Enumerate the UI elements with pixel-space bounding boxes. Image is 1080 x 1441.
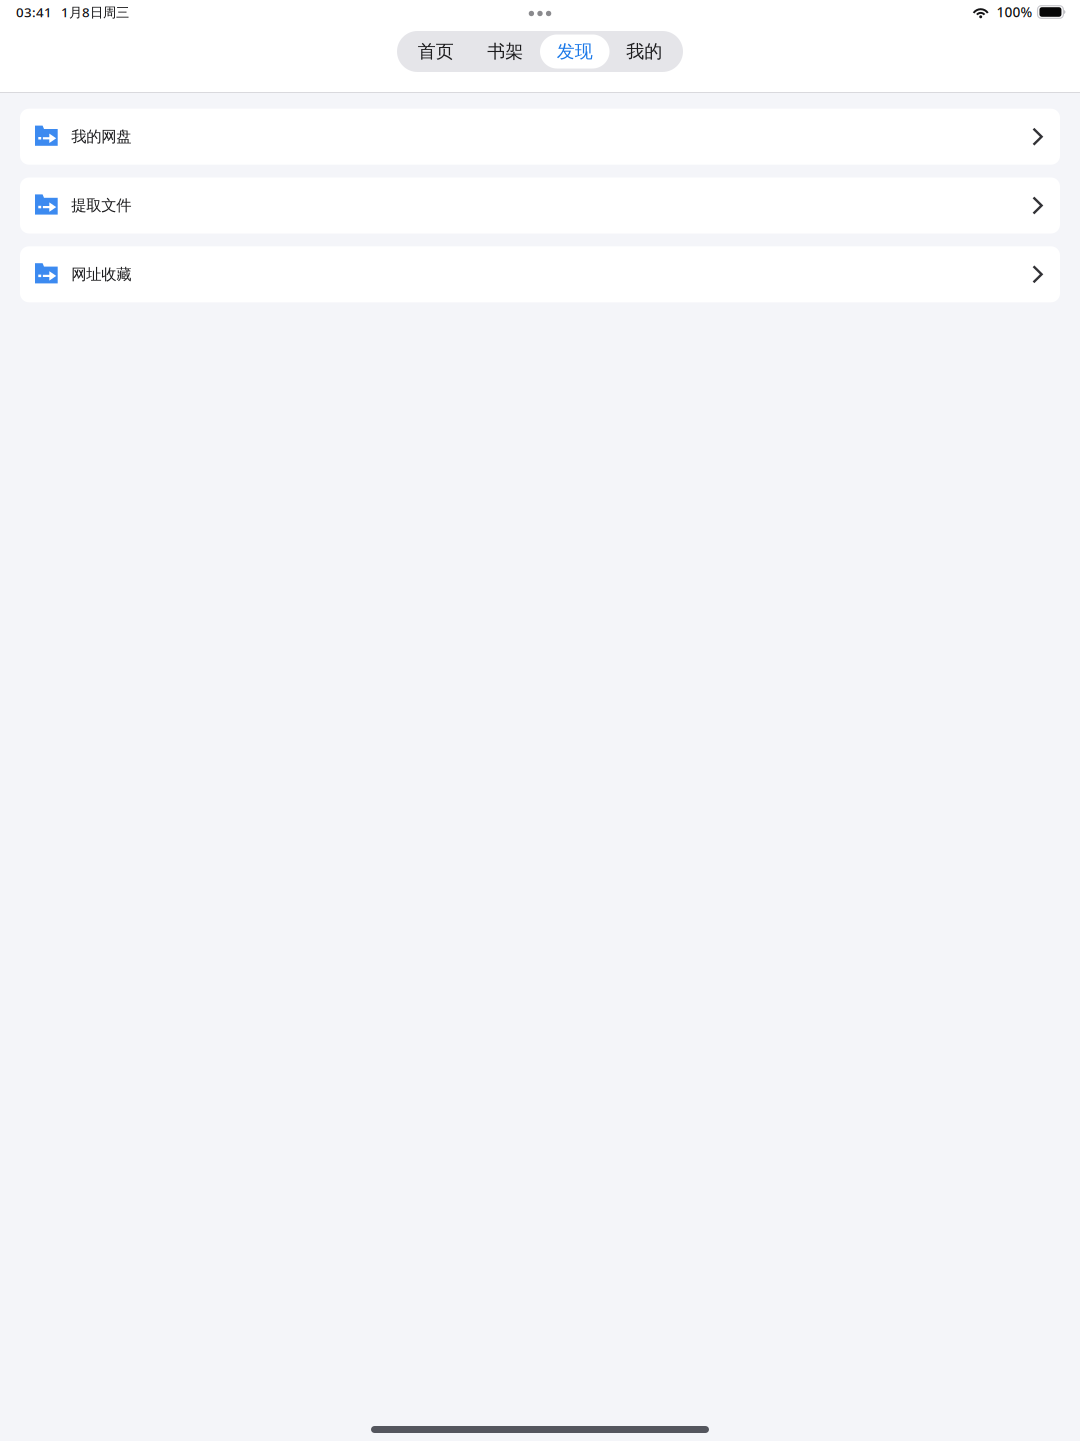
button[interactable]: 我的网盘	[20, 109, 1060, 165]
staticText: 提取文件	[71, 196, 131, 215]
button[interactable]: 我的	[609, 34, 679, 68]
button[interactable]: 提取文件	[20, 177, 1060, 233]
staticText: 03:41 1月8日周三	[16, 3, 129, 21]
staticText: 书架	[487, 40, 523, 63]
staticText: 首页	[418, 40, 454, 63]
button[interactable]: 网址收藏	[20, 246, 1060, 302]
staticText: 100%	[996, 3, 1032, 21]
staticText: 我的网盘	[71, 127, 131, 146]
staticText: 网址收藏	[71, 265, 131, 284]
staticText: 我的	[626, 40, 662, 63]
button[interactable]: 书架	[470, 34, 540, 68]
button[interactable]: 发现	[540, 34, 609, 68]
button[interactable]: 首页	[401, 34, 470, 68]
staticText: 发现	[557, 40, 593, 63]
